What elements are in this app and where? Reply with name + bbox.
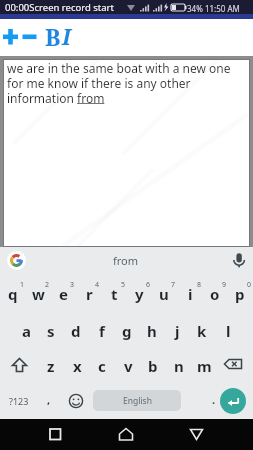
button[interactable]: z — [39, 353, 63, 379]
staticText: 6 — [146, 280, 151, 290]
button[interactable]: w — [26, 281, 50, 307]
button[interactable]: from — [96, 249, 156, 272]
button[interactable]: u — [152, 281, 176, 307]
staticText: l — [226, 321, 231, 341]
button[interactable]: English — [93, 390, 181, 411]
button[interactable]: c — [90, 353, 114, 379]
staticText: 0 — [247, 280, 252, 290]
button[interactable] — [220, 354, 248, 378]
staticText: 2 — [45, 280, 50, 290]
button[interactable]: B — [44, 21, 61, 51]
staticText: d — [71, 321, 81, 341]
button[interactable] — [114, 423, 138, 447]
staticText: i — [188, 284, 193, 304]
staticText: 3 — [70, 280, 75, 290]
staticText: a — [22, 321, 31, 341]
button[interactable]: g — [115, 318, 139, 344]
button[interactable]: t — [102, 281, 126, 307]
staticText: , — [47, 392, 51, 407]
staticText: r — [86, 284, 93, 304]
staticText: k — [197, 321, 207, 341]
staticText: q — [8, 284, 18, 304]
staticText: o — [210, 284, 220, 304]
button[interactable]: s — [39, 318, 63, 344]
staticText: m — [197, 356, 212, 376]
button[interactable]: ?123 — [4, 388, 34, 414]
button[interactable]: q — [1, 281, 25, 307]
button[interactable]: y — [127, 281, 151, 307]
button[interactable] — [185, 423, 208, 446]
staticText: s — [47, 321, 55, 341]
button[interactable]: p — [228, 281, 252, 307]
staticText: ?123 — [9, 395, 29, 407]
button[interactable]: i — [178, 281, 202, 307]
staticText: from — [113, 253, 139, 268]
staticText: we are in the same boat with a new one f… — [7, 60, 231, 106]
staticText: p — [235, 284, 245, 304]
button[interactable]: a — [14, 318, 38, 344]
button[interactable]: r — [77, 281, 101, 307]
staticText: j — [175, 321, 180, 341]
staticText: e — [59, 284, 68, 304]
staticText: v — [124, 356, 133, 376]
staticText: B — [45, 21, 61, 51]
button[interactable]: v — [116, 353, 140, 379]
button[interactable]: o — [203, 281, 227, 307]
staticText: n — [174, 356, 184, 376]
staticText: g — [122, 321, 132, 341]
button[interactable]: f — [90, 318, 114, 344]
button[interactable] — [228, 250, 250, 272]
button[interactable]: d — [64, 318, 88, 344]
button[interactable] — [64, 389, 88, 413]
button[interactable] — [7, 251, 26, 270]
staticText: t — [111, 284, 118, 304]
staticText: 7 — [171, 280, 176, 290]
button[interactable]: e — [51, 281, 75, 307]
staticText: I — [62, 21, 71, 51]
button[interactable]: n — [167, 353, 191, 379]
staticText: 5 — [121, 280, 126, 290]
staticText: y — [135, 284, 144, 304]
staticText: . — [212, 392, 216, 407]
button[interactable]: I — [59, 21, 74, 51]
staticText: 34% 11:50 AM — [187, 3, 240, 14]
button[interactable]: j — [165, 318, 189, 344]
staticText: 9 — [222, 280, 227, 290]
staticText: c — [98, 356, 106, 376]
staticText: f — [99, 321, 105, 341]
button[interactable] — [3, 27, 19, 47]
button[interactable] — [44, 423, 67, 446]
staticText: w — [32, 284, 45, 304]
button[interactable] — [6, 353, 32, 378]
button[interactable]: x — [65, 353, 89, 379]
staticText: 00:00Screen record start — [5, 1, 114, 14]
staticText: z — [47, 356, 55, 376]
staticText: 1 — [20, 280, 25, 290]
staticText: 4 — [95, 280, 100, 290]
staticText: h — [147, 321, 157, 341]
button[interactable]: , — [37, 386, 61, 412]
staticText: b — [148, 356, 158, 376]
staticText: u — [159, 284, 169, 304]
staticText: 8 — [197, 280, 202, 290]
button[interactable]: k — [190, 318, 214, 344]
button[interactable]: b — [141, 353, 165, 379]
staticText: x — [73, 356, 82, 376]
staticText: English — [123, 395, 152, 407]
button[interactable]: . — [202, 386, 226, 412]
button[interactable] — [22, 27, 38, 47]
button[interactable]: m — [192, 353, 216, 379]
button[interactable]: h — [140, 318, 164, 344]
button[interactable] — [220, 388, 246, 414]
button[interactable]: l — [216, 318, 240, 344]
